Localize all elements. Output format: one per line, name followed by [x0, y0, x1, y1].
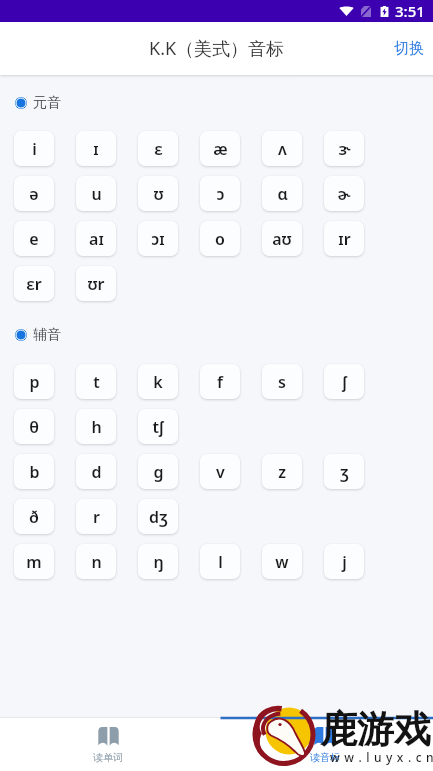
staticText: θ	[29, 416, 39, 438]
button[interactable]: b	[14, 454, 54, 489]
staticText: 鹿游戏	[320, 706, 431, 753]
staticText: 读单词	[93, 751, 123, 764]
button[interactable]: ʌ	[262, 131, 302, 166]
button[interactable]: ʊ	[138, 176, 178, 211]
button[interactable]: o	[200, 221, 240, 256]
staticText: s	[278, 371, 286, 393]
button[interactable]: d	[76, 454, 116, 489]
button[interactable]: θ	[14, 409, 54, 444]
staticText: f	[217, 371, 223, 393]
staticText: ɛ	[154, 138, 163, 160]
button[interactable]: ɑ	[262, 176, 302, 211]
staticText: b	[29, 461, 40, 483]
button[interactable]: ʊr	[76, 266, 116, 301]
button[interactable]: ɪ	[76, 131, 116, 166]
button[interactable]: ɚ	[324, 176, 364, 211]
button[interactable]: w	[262, 544, 302, 579]
button[interactable]: ɔ	[200, 176, 240, 211]
staticText: ɔɪ	[151, 228, 165, 250]
staticText: k	[153, 371, 163, 393]
button[interactable]: v	[200, 454, 240, 489]
staticText: ɚ	[337, 183, 351, 205]
button[interactable]: tʃ	[138, 409, 178, 444]
staticText: ɛr	[26, 273, 42, 295]
button[interactable]: 读音标	[216, 718, 433, 764]
button[interactable]: ɛr	[14, 266, 54, 301]
button[interactable]: p	[14, 364, 54, 399]
staticText: æ	[213, 138, 228, 160]
staticText: ɪr	[338, 228, 351, 250]
staticText: 元音	[33, 94, 61, 112]
staticText: u	[91, 183, 102, 205]
staticText: i	[32, 138, 37, 160]
staticText: 3:51	[395, 1, 425, 21]
button[interactable]: aʊ	[262, 221, 302, 256]
button[interactable]: f	[200, 364, 240, 399]
staticText: ʒ	[340, 461, 349, 483]
button[interactable]: e	[14, 221, 54, 256]
button[interactable]: t	[76, 364, 116, 399]
button[interactable]: l	[200, 544, 240, 579]
staticText: w	[275, 551, 289, 573]
button[interactable]: ʒ	[324, 454, 364, 489]
button[interactable]: i	[14, 131, 54, 166]
staticText: 辅音	[33, 326, 61, 344]
button[interactable]: dʒ	[138, 499, 178, 534]
button[interactable]: 切换	[385, 27, 433, 70]
button[interactable]: s	[262, 364, 302, 399]
button[interactable]: æ	[200, 131, 240, 166]
staticText: ŋ	[153, 551, 164, 573]
staticText: t	[93, 371, 100, 393]
staticText: tʃ	[152, 416, 164, 438]
staticText: n	[91, 551, 102, 573]
staticText: ɑ	[277, 183, 288, 205]
button[interactable]: z	[262, 454, 302, 489]
button[interactable]: ɔɪ	[138, 221, 178, 256]
staticText: l	[218, 551, 223, 573]
button[interactable]: ɪr	[324, 221, 364, 256]
staticText: g	[153, 461, 164, 483]
staticText: z	[278, 461, 286, 483]
staticText: 读音标	[310, 751, 340, 764]
staticText: w w . l u y x . c n	[330, 749, 433, 765]
staticText: o	[215, 228, 225, 250]
button[interactable]: u	[76, 176, 116, 211]
staticText: r	[93, 506, 100, 528]
button[interactable]: ŋ	[138, 544, 178, 579]
button[interactable]: r	[76, 499, 116, 534]
staticText: dʒ	[149, 506, 168, 528]
button[interactable]: n	[76, 544, 116, 579]
staticText: ə	[29, 183, 39, 205]
staticText: e	[29, 228, 39, 250]
staticText: m	[26, 551, 42, 573]
button[interactable]: ð	[14, 499, 54, 534]
staticText: aɪ	[89, 228, 104, 250]
button[interactable]: aɪ	[76, 221, 116, 256]
button[interactable]: h	[76, 409, 116, 444]
staticText: ɪ	[93, 138, 99, 160]
staticText: ʊr	[87, 273, 105, 295]
staticText: ɔ	[216, 183, 225, 205]
button[interactable]: ɝ	[324, 131, 364, 166]
staticText: d	[91, 461, 102, 483]
staticText: v	[216, 461, 225, 483]
button[interactable]: ə	[14, 176, 54, 211]
button[interactable]: m	[14, 544, 54, 579]
staticText: K.K（美式）音标	[149, 36, 285, 61]
staticText: ʌ	[278, 138, 287, 160]
staticText: p	[29, 371, 40, 393]
staticText: ʃ	[342, 371, 347, 393]
staticText: ð	[29, 506, 39, 528]
staticText: j	[342, 551, 347, 573]
button[interactable]: k	[138, 364, 178, 399]
staticText: aʊ	[272, 228, 292, 250]
button[interactable]: 读单词	[0, 718, 216, 764]
staticText: ɝ	[338, 138, 351, 160]
staticText: 切换	[394, 39, 424, 58]
button[interactable]: j	[324, 544, 364, 579]
staticText: ʊ	[153, 183, 164, 205]
staticText: h	[91, 416, 102, 438]
button[interactable]: ɛ	[138, 131, 178, 166]
button[interactable]: ʃ	[324, 364, 364, 399]
button[interactable]: g	[138, 454, 178, 489]
